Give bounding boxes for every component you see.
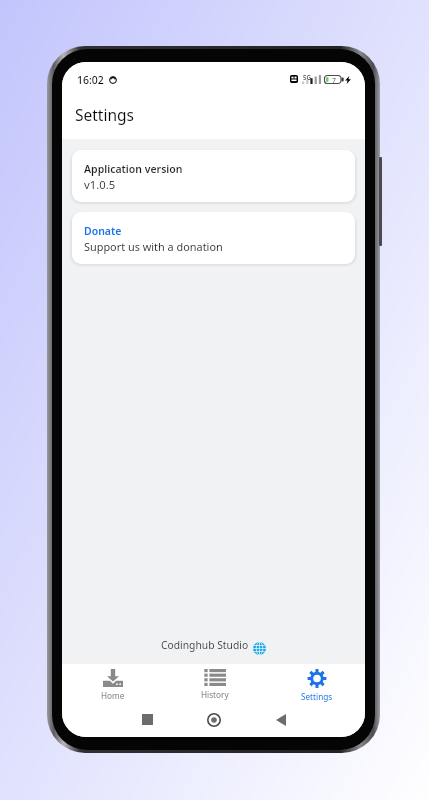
button[interactable]: Home: [198, 702, 229, 737]
staticText: 16:02: [77, 73, 104, 87]
button[interactable]: Settings: [264, 664, 365, 702]
staticText: Codinghub Studio: [161, 638, 249, 652]
staticText: Application version: [84, 162, 183, 176]
staticText: Settings: [75, 104, 134, 125]
staticText: v1.0.5: [84, 177, 116, 192]
button[interactable]: Back: [265, 702, 296, 737]
staticText: Donate: [84, 224, 122, 238]
button[interactable]: Recent apps: [132, 702, 163, 737]
other: Home: [103, 669, 123, 687]
button[interactable]: Donate: [72, 212, 355, 264]
other: History: [204, 669, 226, 686]
staticText: 7: [332, 76, 337, 86]
staticText: History: [201, 689, 229, 700]
staticText: Home: [101, 690, 125, 701]
button[interactable]: Home: [62, 664, 163, 702]
staticText: Settings: [301, 691, 333, 702]
other: Settings: [307, 669, 327, 688]
staticText: 5G: [303, 73, 312, 81]
staticText: Support us with a donation: [84, 239, 223, 254]
button[interactable]: History: [163, 664, 264, 702]
button[interactable]: Application version: [72, 150, 355, 202]
